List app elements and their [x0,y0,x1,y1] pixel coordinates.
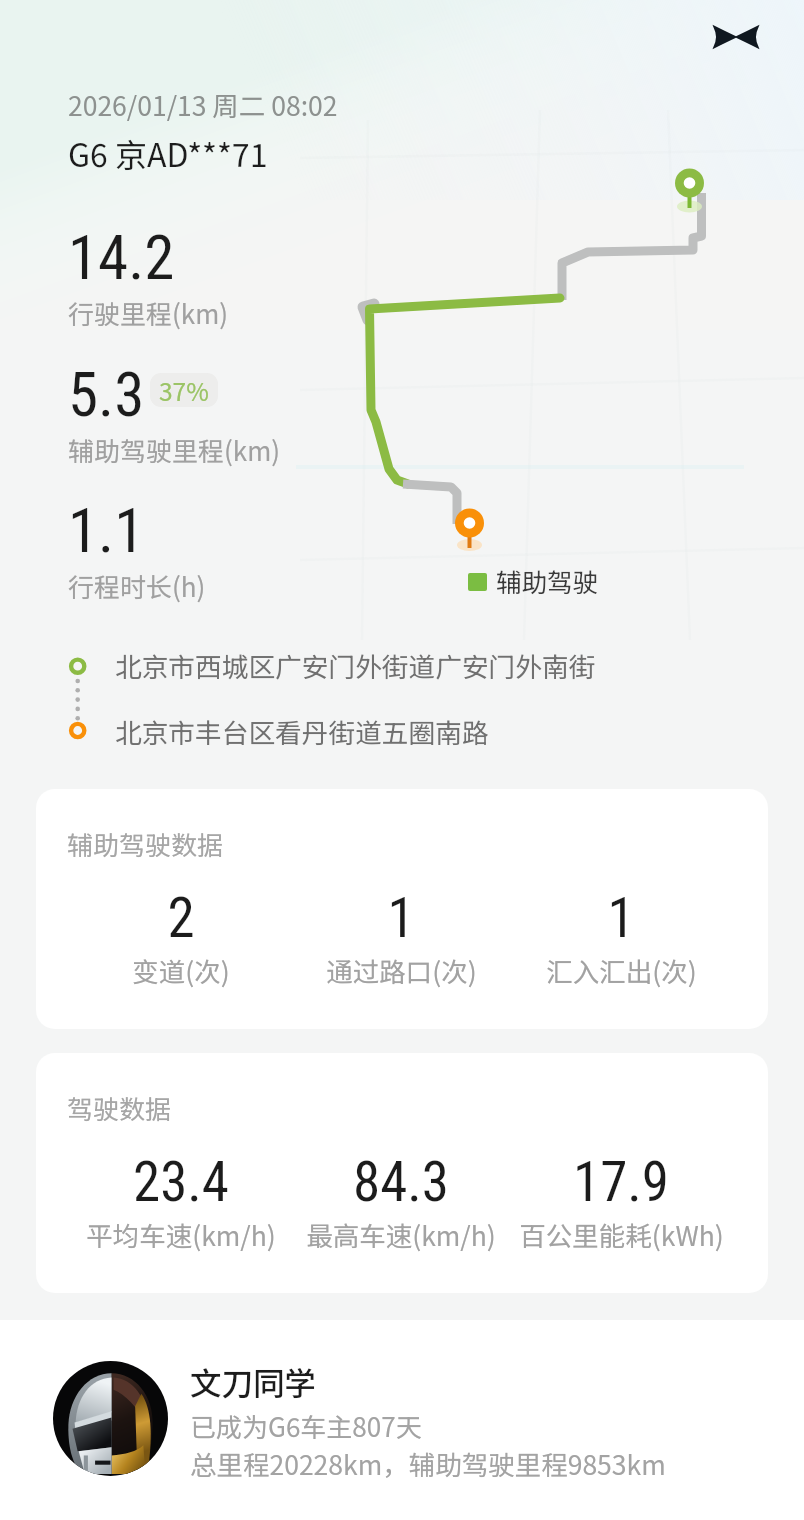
staticText: 最高车速(km/h) [306,1215,496,1253]
staticText: 2 [167,886,195,950]
staticText: 行程时长(h) [68,567,206,605]
staticText: 北京市西城区广安门外街道广安门外南街 [115,646,596,685]
staticText: 17.9 [573,1150,669,1214]
staticText: 变道(次) [132,951,230,989]
staticText: 平均车速(km/h) [86,1215,276,1253]
staticText: 北京市丰台区看丹街道五圈南路 [115,712,489,751]
staticText: 驾驶数据 [67,1089,172,1127]
staticText: 总里程20228km，辅助驾驶里程9853km [190,1444,666,1482]
staticText: 37% [159,373,209,407]
staticText: 1.1 [68,495,145,566]
staticText: 辅助驾驶 [496,562,599,599]
staticText: 84.3 [353,1150,449,1214]
staticText: 14.2 [68,222,175,293]
staticText: 5.3 [68,359,145,430]
staticText: 通过路口(次) [326,951,477,989]
button[interactable]: 北京市西城区广安门外街道广安门外南街 [56,643,768,689]
button[interactable]: 辅助驾驶数据 [36,789,768,1029]
button[interactable]: 驾驶数据 [36,1053,768,1293]
button[interactable]: 北京市丰台区看丹街道五圈南路 [56,709,768,755]
button[interactable]: 辅助驾驶 [468,562,599,599]
staticText: 百公里能耗(kWh) [519,1215,724,1253]
staticText: 2026/01/13 周二 08:02 [68,85,338,123]
button[interactable]: Close [702,9,770,65]
staticText: 辅助驾驶数据 [67,825,224,863]
staticText: 已成为G6车主807天 [190,1407,422,1445]
button[interactable]: 文刀同学 [0,1320,804,1520]
staticText: 文刀同学 [190,1358,317,1404]
staticText: 辅助驾驶里程(km) [68,431,281,469]
staticText: 行驶里程(km) [68,294,229,332]
staticText: G6 京AD***71 [68,130,268,176]
staticText: 1 [387,886,415,950]
staticText: 23.4 [133,1150,229,1214]
staticText: 1 [607,886,635,950]
staticText: 汇入汇出(次) [546,951,697,989]
